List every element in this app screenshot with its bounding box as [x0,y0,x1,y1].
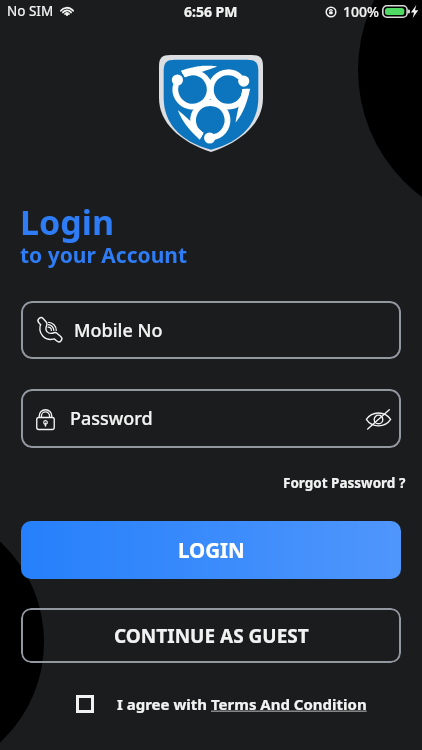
staticText: I agree with [117,694,211,714]
button[interactable]: Terms And Condition [211,694,367,714]
button[interactable]: Mobile No [21,301,401,359]
staticText: LOGIN [178,536,245,564]
button[interactable]: Password [21,389,401,448]
staticText: CONTINUE AS GUEST [114,623,309,649]
staticText: Mobile No [74,318,163,343]
staticText: Password [70,406,153,431]
staticText: 6:56 PM [184,2,238,21]
staticText: Login [20,199,115,245]
staticText: Terms And Condition [211,694,367,714]
staticText: to your Account [20,241,188,270]
staticText: 100% [343,2,379,21]
button[interactable]: LOGIN [21,521,401,579]
button[interactable]: I agree checkbox [76,695,94,713]
button[interactable]: CONTINUE AS GUEST [21,608,401,663]
button[interactable]: Forgot Password ? [281,471,408,495]
staticText: Forgot Password ? [283,474,406,492]
button[interactable]: Show password [360,401,396,437]
staticText: No SIM [7,2,54,20]
